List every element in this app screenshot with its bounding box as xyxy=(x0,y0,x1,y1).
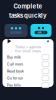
button[interactable]: Level 2 xyxy=(30,24,51,37)
button[interactable]: Call mom xyxy=(7,61,49,67)
button[interactable]: Go for run xyxy=(7,75,49,81)
staticText: five small steps xyxy=(15,49,41,53)
staticText: tasks quickly xyxy=(9,12,47,19)
button[interactable]: Buy milk xyxy=(7,54,49,60)
staticText: Go for run xyxy=(7,76,23,80)
button[interactable]: Play xyxy=(7,39,12,44)
staticText: Pay bills xyxy=(7,83,21,87)
staticText: Today's agenda xyxy=(15,45,41,49)
button[interactable]: Progress card xyxy=(4,24,27,37)
staticText: Read book xyxy=(7,69,24,73)
staticText: Buy milk xyxy=(7,55,21,59)
button[interactable]: Pay bills xyxy=(7,82,49,88)
button[interactable]: Read book xyxy=(7,68,49,74)
staticText: Call mom xyxy=(7,62,23,66)
staticText: Level 2 xyxy=(37,31,45,34)
staticText: Complete xyxy=(13,3,42,10)
